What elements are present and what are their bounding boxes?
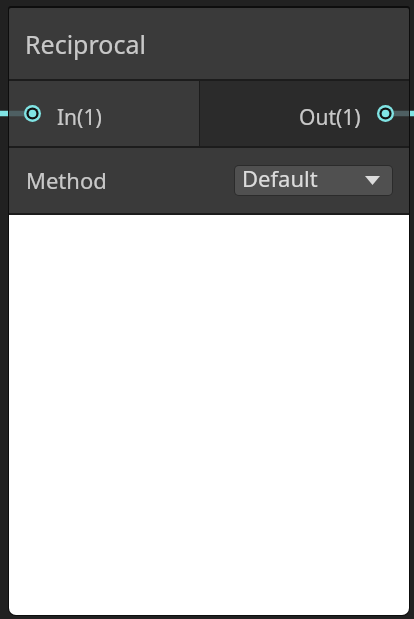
button[interactable]: Out(1) bbox=[200, 81, 409, 146]
other: Input port bbox=[24, 105, 41, 122]
button[interactable]: Default bbox=[235, 166, 392, 195]
staticText: In(1) bbox=[57, 103, 102, 132]
staticText: Out(1) bbox=[299, 103, 361, 132]
staticText: Method bbox=[26, 165, 107, 195]
staticText: Reciprocal bbox=[25, 27, 146, 61]
button[interactable]: Reciprocal bbox=[9, 8, 409, 79]
staticText: Default bbox=[242, 166, 318, 192]
other: Output port bbox=[377, 105, 394, 122]
button[interactable]: Input port bbox=[9, 81, 199, 146]
other: Open method menu bbox=[365, 176, 380, 185]
